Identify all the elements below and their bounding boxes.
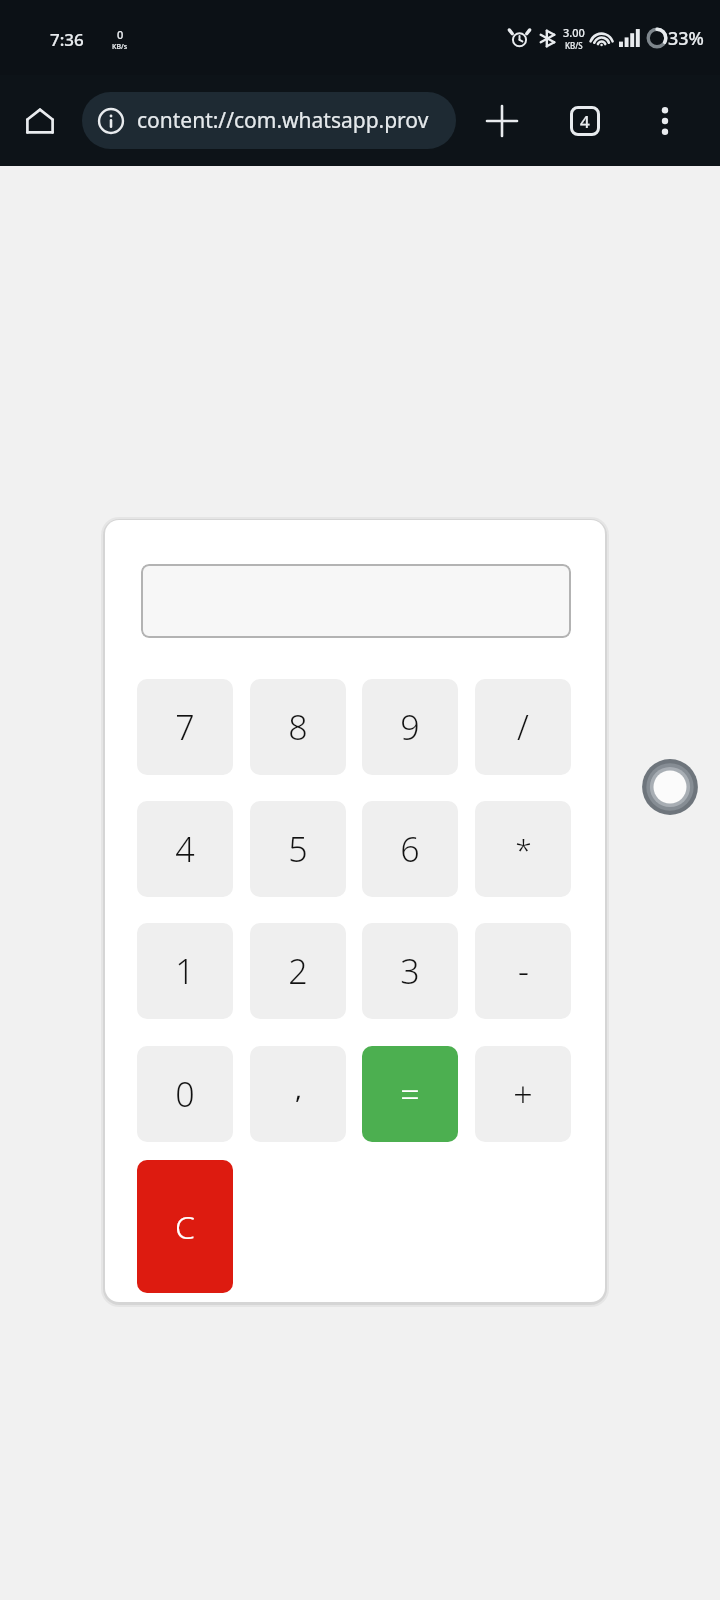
staticText: - (518, 948, 529, 994)
staticText: 5 (288, 826, 308, 872)
button[interactable]: 1 (137, 923, 233, 1019)
button[interactable]: 2 (250, 923, 346, 1019)
staticText: 33% (668, 26, 704, 51)
staticText: 1 (175, 948, 195, 994)
staticText: C (175, 1205, 195, 1249)
staticText: KB/S (565, 40, 583, 51)
button[interactable]: Home (16, 97, 64, 145)
staticText: content://com.whatsapp.prov (137, 106, 429, 135)
button[interactable]: 9 (362, 679, 458, 775)
staticText: = (400, 1071, 420, 1117)
button[interactable]: 6 (362, 801, 458, 897)
staticText: 6 (400, 826, 420, 872)
button[interactable]: = (362, 1046, 458, 1142)
staticText: 0 (175, 1071, 195, 1117)
staticText: , (295, 1071, 302, 1106)
button[interactable]: - (475, 923, 571, 1019)
button[interactable]: content://com.whatsapp.prov (82, 92, 456, 149)
button[interactable]: 8 (250, 679, 346, 775)
button[interactable]: 4 (137, 801, 233, 897)
button[interactable]: / (475, 679, 571, 775)
button[interactable]: C (137, 1160, 233, 1293)
staticText: 4 (580, 110, 590, 133)
staticText: 7:36 (50, 28, 84, 51)
button[interactable] (141, 564, 571, 638)
staticText: 7 (175, 704, 195, 750)
staticText: + (513, 1071, 533, 1117)
staticText: 3 (400, 948, 420, 994)
button[interactable]: More options (641, 97, 689, 145)
button[interactable]: , (250, 1046, 346, 1142)
button[interactable]: 7 (137, 679, 233, 775)
staticText: 8 (288, 704, 308, 750)
staticText: 3.00 (563, 25, 585, 40)
staticText: * (515, 829, 532, 870)
staticText: KB/s (112, 42, 128, 52)
button[interactable]: + (475, 1046, 571, 1142)
button[interactable]: 3 (362, 923, 458, 1019)
staticText: 0 (117, 27, 124, 42)
button[interactable]: New tab (478, 97, 526, 145)
staticText: / (517, 704, 529, 750)
button[interactable]: 0 (137, 1046, 233, 1142)
staticText: 2 (288, 948, 308, 994)
button[interactable]: * (475, 801, 571, 897)
staticText: 9 (400, 704, 420, 750)
staticText: 4 (175, 826, 195, 872)
button[interactable]: Floating control (640, 757, 700, 817)
button[interactable]: Tabs (561, 97, 609, 145)
button[interactable]: 5 (250, 801, 346, 897)
